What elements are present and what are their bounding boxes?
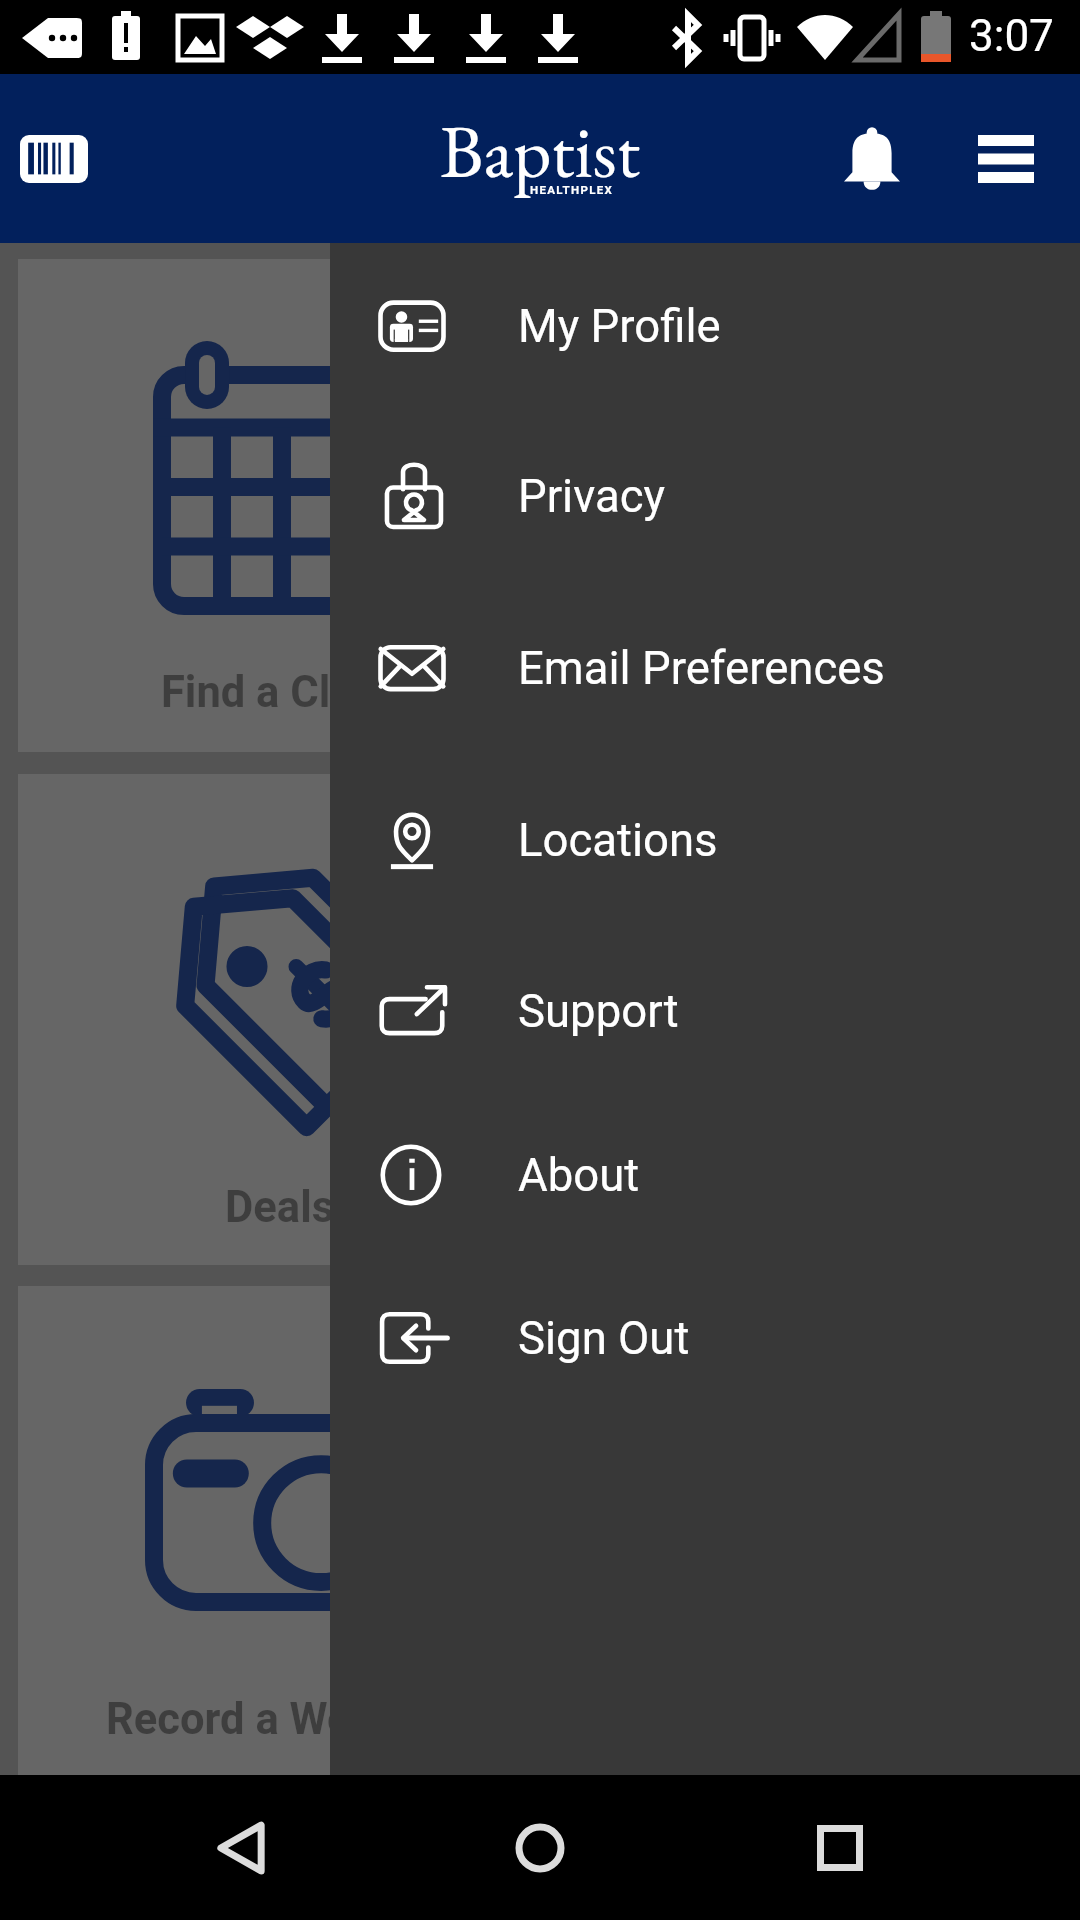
button[interactable]: Locations — [330, 755, 1080, 925]
staticText: Record a Workout — [106, 1694, 455, 1745]
staticText: Deals — [225, 1182, 335, 1233]
staticText: Support — [518, 985, 679, 1038]
button[interactable]: Privacy — [330, 411, 1080, 581]
staticText: Privacy — [518, 470, 665, 523]
button[interactable]: About — [330, 1090, 1080, 1260]
button[interactable]: My Profile — [330, 241, 1080, 411]
button[interactable]: Notifications — [824, 111, 920, 207]
button[interactable]: Recent apps — [790, 1798, 890, 1898]
button[interactable]: Email Preferences — [330, 583, 1080, 753]
staticText: Find a Class — [161, 667, 399, 718]
staticText: About — [518, 1149, 640, 1202]
button[interactable]: Support — [330, 926, 1080, 1096]
button[interactable]: Open navigation menu — [958, 111, 1054, 207]
staticText: My Profile — [518, 300, 721, 353]
button[interactable]: Scan membership barcode — [6, 111, 102, 207]
staticText: Locations — [518, 814, 718, 867]
button[interactable]: Home — [490, 1798, 590, 1898]
button[interactable]: Sign Out — [330, 1253, 1080, 1423]
button[interactable]: Deals — [18, 774, 542, 1265]
staticText: 3:07 — [969, 10, 1054, 62]
staticText: HEALTHPLEX — [530, 183, 614, 196]
button[interactable]: Find a Class — [18, 259, 542, 752]
staticText: Email Preferences — [518, 642, 885, 695]
staticText: Baptist — [440, 102, 640, 199]
staticText: Sign Out — [518, 1312, 690, 1365]
button[interactable]: Record a Workout — [18, 1286, 542, 1778]
button[interactable]: Back — [191, 1798, 291, 1898]
